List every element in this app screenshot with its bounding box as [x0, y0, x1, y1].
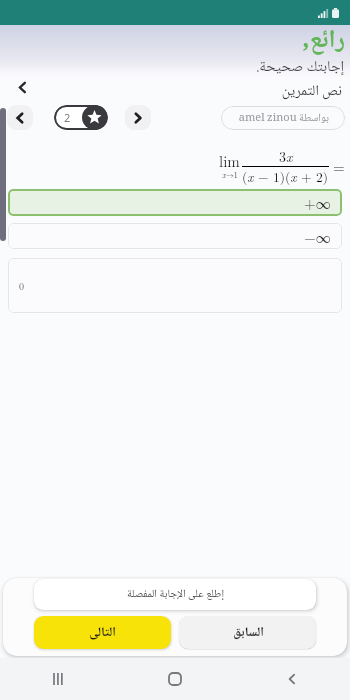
staticText: بواسطة amel zinou — [238, 109, 329, 128]
staticText: 0 — [19, 279, 24, 293]
staticText: 2 — [64, 110, 71, 125]
button[interactable]: إطلع على الإجابة المفصلة — [34, 579, 316, 610]
button[interactable]: Next exercise — [125, 105, 151, 130]
staticText: رائع, — [0, 20, 345, 63]
button[interactable]: بواسطة amel zinou — [221, 106, 345, 130]
button[interactable]: 2 — [54, 105, 108, 130]
button[interactable]: التالى — [34, 616, 171, 649]
button[interactable]: 0 — [8, 258, 342, 313]
staticText: السابق — [232, 622, 264, 644]
button[interactable]: Recent apps — [40, 661, 76, 697]
button[interactable]: +∞ — [8, 189, 342, 216]
staticText: 3x — [279, 146, 293, 166]
staticText: = — [333, 156, 345, 177]
button[interactable]: −∞ — [8, 223, 342, 249]
staticText: التالى — [89, 622, 116, 644]
staticText: lim — [219, 150, 240, 171]
staticText: نص التمرين — [0, 79, 342, 104]
staticText: +∞ — [304, 192, 331, 213]
button[interactable]: Previous exercise — [7, 105, 33, 130]
staticText: (x − 1)(x + 2) — [242, 167, 329, 186]
staticText: x→1 — [222, 169, 238, 180]
staticText: إجابتك صحيحة. — [0, 55, 344, 81]
button[interactable]: Back — [12, 77, 33, 98]
button[interactable]: Back — [274, 661, 310, 697]
button[interactable]: السابق — [179, 616, 316, 649]
button[interactable]: Home — [157, 661, 193, 697]
staticText: −∞ — [304, 226, 331, 247]
staticText: إطلع على الإجابة المفصلة — [127, 585, 224, 604]
